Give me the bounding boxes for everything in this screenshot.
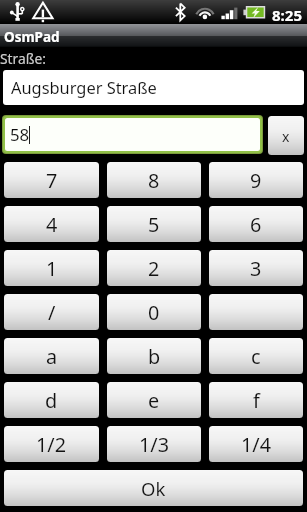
staticText: 8:25 [272,5,302,25]
button[interactable]: / [4,294,99,330]
staticText: 0 [148,299,160,326]
button[interactable]: 3 [209,250,303,286]
button[interactable]: a [4,338,99,374]
staticText: 1/3 [139,431,170,458]
staticText: a [46,343,58,370]
staticText: 8 [148,167,160,194]
staticText: e [148,387,160,414]
staticText: x [282,127,290,146]
staticText: 58 [10,123,30,146]
button[interactable]: 0 [107,294,201,330]
staticText: f [253,387,260,414]
staticText: 2 [148,255,160,282]
staticText: 3 [250,255,262,282]
button[interactable]: b [107,338,201,374]
button[interactable]: 1 [4,250,99,286]
staticText: Ok [141,476,166,501]
staticText: 9 [250,167,262,194]
button[interactable]: e [107,382,201,418]
button[interactable]: d [4,382,99,418]
button[interactable]: 8 [107,162,201,198]
staticText: b [148,343,161,370]
staticText: 7 [46,167,58,194]
staticText: 4 [46,211,58,238]
button[interactable]: 58 [5,118,260,151]
button[interactable]: 7 [4,162,99,198]
staticText: Augsburger Straße [11,76,157,98]
button[interactable]: Ok [4,470,303,506]
button[interactable]: 5 [107,206,201,242]
button[interactable]: c [209,338,303,374]
button[interactable]: Clear [268,116,304,155]
staticText: 1 [46,255,58,282]
staticText: c [251,343,261,370]
staticText: OsmPad [4,28,60,46]
button[interactable]: 6 [209,206,303,242]
button[interactable]: 2 [107,250,201,286]
button[interactable]: 9 [209,162,303,198]
button[interactable]: 1/3 [107,426,201,462]
button[interactable]: 4 [4,206,99,242]
staticText: Straße: [0,49,46,68]
staticText: / [48,299,56,326]
staticText: d [45,387,58,414]
button[interactable]: Empty key [209,294,303,330]
button[interactable]: f [209,382,303,418]
staticText: 1/4 [241,431,272,458]
staticText: 1/2 [36,431,67,458]
staticText: 5 [148,211,160,238]
button[interactable]: Augsburger Straße [3,70,304,105]
staticText: 6 [250,211,262,238]
button[interactable]: 1/2 [4,426,99,462]
button[interactable]: 1/4 [209,426,303,462]
